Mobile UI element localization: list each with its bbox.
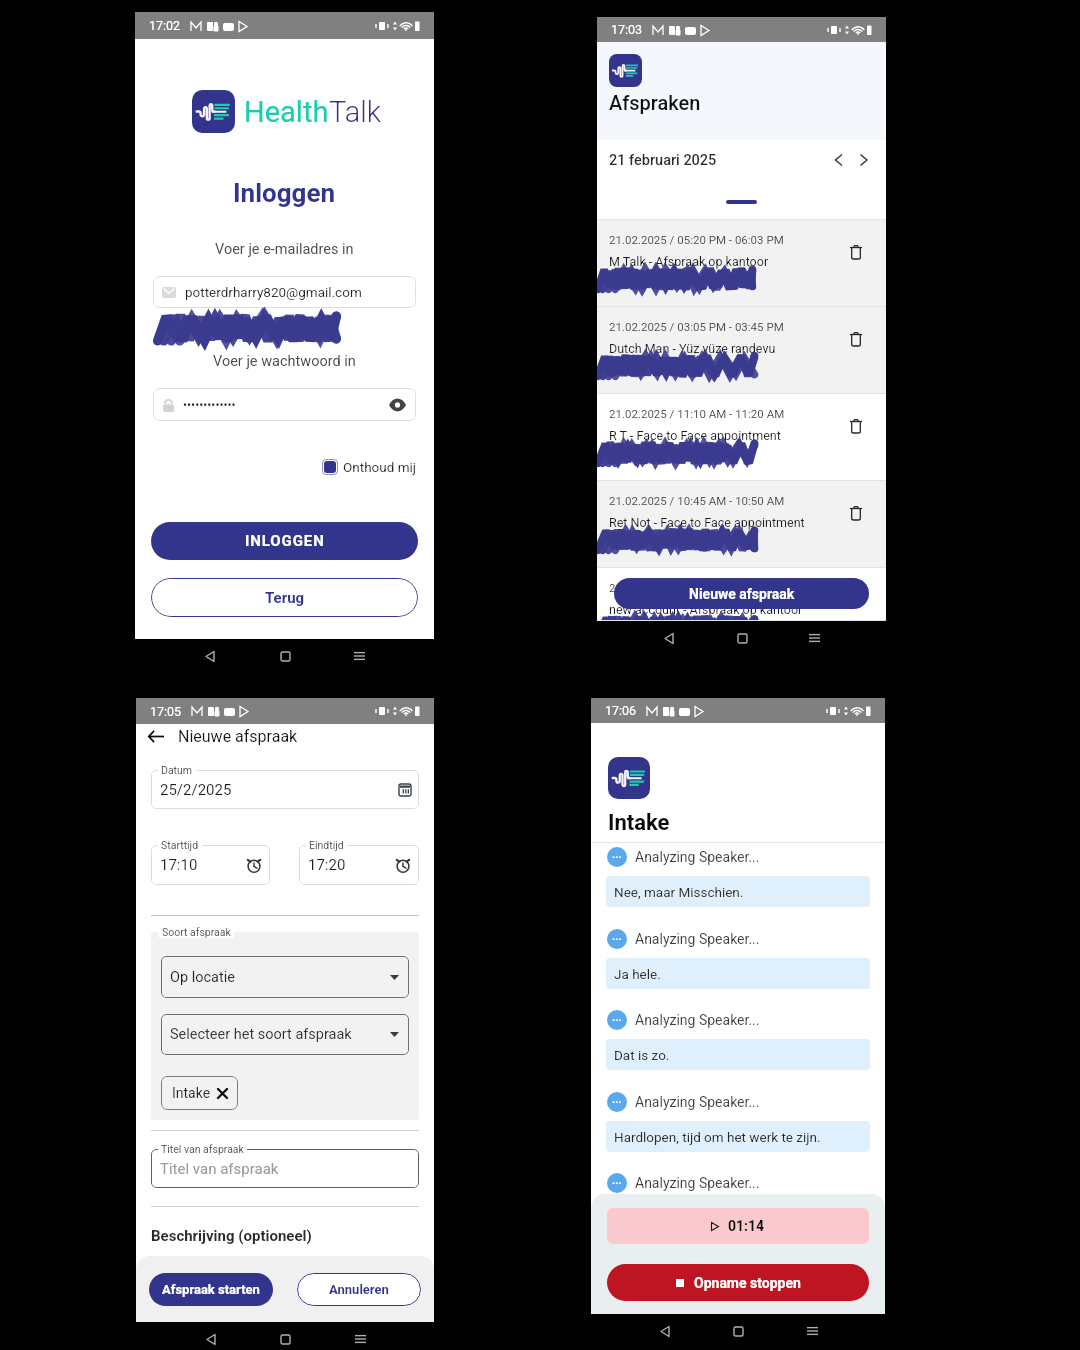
staticText: new account - Afspraak op kantoor (609, 602, 803, 617)
staticText: ... (612, 1011, 622, 1024)
staticText: 17:20 (308, 856, 346, 874)
staticText: ... (612, 848, 622, 861)
button[interactable]: Back (197, 1325, 225, 1350)
staticText: Op locatie (170, 969, 235, 986)
button[interactable]: Home (271, 642, 299, 670)
staticText: potterdrharry820@gmail.com (185, 284, 362, 300)
staticText: Annuleren (329, 1282, 389, 1297)
staticText: ••••••••••••• (183, 398, 236, 412)
button[interactable]: Delete appointment (846, 503, 866, 523)
staticText: 21 februari 2025 (609, 152, 717, 169)
staticText: ... (612, 1093, 622, 1106)
staticText: Analyzing Speaker... (635, 1175, 760, 1191)
button[interactable]: Titel van afspraak (151, 1149, 419, 1188)
staticText: Titel van afspraak (161, 1143, 244, 1155)
staticText: Ret Not - Face to Face appointment (609, 515, 805, 530)
staticText: INLOGGEN (245, 532, 325, 550)
button[interactable]: Recents (345, 642, 373, 670)
button[interactable]: potterdrharry820@gmail.com (153, 276, 416, 308)
staticText: Nieuwe afspraak (178, 727, 298, 746)
button[interactable]: Afspraak starten (149, 1273, 273, 1306)
button[interactable]: Back (145, 725, 167, 747)
staticText: Selecteer het soort afspraak (170, 1026, 352, 1043)
staticText: Afspraak starten (162, 1282, 260, 1297)
staticText: M Talk - Afspraak op kantoor (609, 254, 769, 269)
button[interactable]: Delete appointment (846, 242, 866, 262)
staticText: 21.02.2025 / 05:20 PM - 06:03 PM (609, 233, 784, 246)
staticText: Intake (172, 1085, 211, 1101)
staticText: 21.02.2025 / 10:45 AM - 10:50 AM (609, 494, 785, 507)
button[interactable]: 21.02.2025 / 09:15 AM - 09:45 AM (597, 568, 886, 621)
staticText: Dutch Man - Yüz yüze randevu (609, 341, 776, 356)
staticText: Dat is zo. (614, 1047, 670, 1063)
staticText: Intake (608, 810, 670, 836)
staticText: Nieuwe afspraak (689, 586, 795, 602)
button[interactable]: Opname stoppen (607, 1264, 869, 1301)
button[interactable]: Back (196, 642, 224, 670)
staticText: 01:14 (728, 1218, 765, 1234)
button[interactable]: 21.02.2025 / 05:20 PM - 06:03 PM (597, 220, 886, 307)
button[interactable]: Back (655, 624, 683, 652)
staticText: 21.02.2025 / 11:10 AM - 11:20 AM (609, 407, 785, 420)
button[interactable]: Recents (798, 1317, 826, 1345)
button[interactable]: Home (728, 624, 756, 652)
staticText: Starttijd (161, 839, 199, 851)
button[interactable]: Recents (800, 624, 828, 652)
staticText: Titel van afspraak (160, 1160, 279, 1178)
button[interactable]: Delete appointment (846, 416, 866, 436)
staticText: 21.02.2025 / 09:15 AM - 09:45 AM (609, 581, 785, 594)
button[interactable]: Delete appointment (846, 590, 866, 610)
staticText: Analyzing Speaker... (635, 931, 760, 947)
staticText: Terug (265, 589, 305, 607)
staticText: R T - Face to Face appointment (609, 428, 781, 443)
button[interactable]: INLOGGEN (151, 522, 418, 560)
button[interactable]: 25/2/2025 (151, 770, 419, 809)
staticText: Nee, maar Misschien. (614, 884, 744, 900)
button[interactable]: Intake (161, 1076, 238, 1110)
button[interactable]: Delete appointment (846, 329, 866, 349)
staticText: Beschrijving (optioneel) (151, 1227, 312, 1245)
staticText: Ja hele. (614, 966, 661, 982)
staticText: 25/2/2025 (160, 781, 232, 799)
staticText: Onthoud mij (343, 459, 417, 475)
button[interactable]: 17:10 (151, 845, 270, 885)
staticText: Health (244, 95, 329, 129)
staticText: Voer je e-mailadres in (215, 241, 354, 258)
button[interactable]: 21.02.2025 / 11:10 AM - 11:20 AM (597, 394, 886, 481)
staticText: 21.02.2025 / 03:05 PM - 03:45 PM (609, 320, 784, 333)
staticText: Analyzing Speaker... (635, 1012, 760, 1028)
button[interactable]: Next day (852, 149, 874, 171)
button[interactable]: Terug (151, 578, 418, 617)
button[interactable]: 01:14 (607, 1208, 869, 1244)
staticText: Soort afspraak (162, 926, 231, 938)
staticText: Analyzing Speaker... (635, 849, 760, 865)
staticText: Talk (329, 95, 381, 129)
staticText: Datum (161, 764, 193, 776)
button[interactable]: Home (271, 1325, 299, 1350)
button[interactable]: Op locatie (161, 956, 409, 998)
staticText: Eindtijd (309, 839, 344, 851)
button[interactable]: Annuleren (297, 1273, 421, 1306)
staticText: Afspraken (609, 91, 701, 114)
button[interactable]: 17:20 (299, 845, 419, 885)
staticText: 17:05 (150, 704, 182, 719)
staticText: 17:10 (160, 856, 198, 874)
staticText: 17:02 (149, 18, 181, 33)
staticText: Hardlopen, tijd om het werk te zijn. (614, 1129, 821, 1145)
button[interactable]: Previous day (827, 149, 849, 171)
staticText: ... (612, 930, 622, 943)
button[interactable]: Nieuwe afspraak (614, 578, 869, 609)
button[interactable]: Recents (346, 1325, 374, 1350)
button[interactable]: ••••••••••••• (153, 388, 416, 421)
button[interactable]: 21.02.2025 / 10:45 AM - 10:50 AM (597, 481, 886, 568)
button[interactable]: Selecteer het soort afspraak (161, 1014, 409, 1055)
button[interactable]: Home (724, 1317, 752, 1345)
button[interactable]: Onthoud mij (322, 459, 417, 475)
staticText: 17:06 (605, 703, 637, 718)
button[interactable]: Show password (384, 392, 410, 418)
button[interactable]: 21.02.2025 / 03:05 PM - 03:45 PM (597, 307, 886, 394)
staticText: 17:03 (611, 22, 643, 37)
button[interactable]: Back (651, 1317, 679, 1345)
staticText: ... (612, 1174, 622, 1187)
staticText: Opname stoppen (694, 1275, 801, 1291)
